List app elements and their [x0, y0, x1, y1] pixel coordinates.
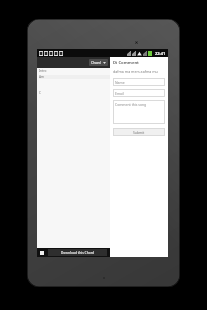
button[interactable]: Comment this song [113, 100, 165, 124]
staticText: dafma ma mers aafma mu [113, 69, 158, 74]
staticText: Comment this song [115, 102, 147, 107]
staticText: Email [115, 91, 124, 95]
staticText: Name [115, 80, 125, 84]
staticText: Di Comment [113, 60, 139, 66]
button[interactable]: Chord [89, 59, 108, 66]
staticText: Intro [39, 69, 47, 73]
staticText: Submit [133, 130, 145, 135]
button[interactable]: Stop [37, 248, 110, 257]
staticText: Download this Chord [61, 251, 95, 255]
button[interactable]: Email [113, 89, 165, 97]
button[interactable]: Submit [113, 128, 165, 136]
button[interactable]: Name [113, 78, 165, 86]
staticText: Chord [91, 60, 101, 65]
staticText: C [39, 91, 42, 95]
staticText: Am [39, 75, 45, 79]
staticText: 22:41 [155, 51, 166, 56]
